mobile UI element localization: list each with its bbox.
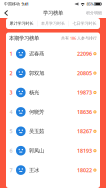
staticText: 杨光 [29, 89, 39, 96]
staticText: 本期学习榜单 [9, 35, 39, 42]
staticText: 吴玉茹 [29, 128, 44, 135]
staticText: 七日学习时长 [72, 21, 96, 26]
staticText: 迟春燕 [29, 50, 44, 57]
staticText: 186 [69, 36, 77, 41]
staticText: 4 [9, 108, 12, 115]
button[interactable]: 1 [6, 44, 100, 63]
staticText: 5 [9, 128, 12, 135]
staticText: 20805 [77, 70, 92, 77]
staticText: 9:41 [22, 1, 29, 7]
button[interactable]: 2 [6, 63, 100, 83]
button[interactable]: 5 [6, 122, 100, 141]
button[interactable]: 4 [6, 102, 100, 122]
staticText: 7 [9, 167, 12, 174]
staticText: 18022 [77, 167, 92, 174]
button[interactable]: 返回 [0, 8, 13, 18]
button[interactable]: 本月学习时长 [37, 18, 69, 29]
staticText: 学习榜单 [43, 10, 63, 16]
button[interactable]: 七日学习时长 [69, 18, 100, 29]
staticText: 累计学习时长 [9, 21, 33, 26]
staticText: 共有 [61, 36, 69, 41]
staticText: 王冰 [29, 167, 39, 173]
staticText: 6 [9, 147, 12, 154]
staticText: 3 [9, 89, 12, 96]
button[interactable]: 7 [6, 160, 100, 180]
staticText: 2 [9, 70, 12, 77]
staticText: 何晓芳 [29, 109, 44, 115]
staticText: 中国移动 [4, 1, 20, 6]
button[interactable]: 3 [6, 83, 100, 102]
staticText: 18636 [77, 108, 92, 115]
staticText: 积分明细 [86, 10, 102, 15]
button[interactable]: 累计学习时长 [6, 18, 37, 29]
staticText: 22096 [77, 50, 92, 57]
staticText: 郭双旭 [29, 70, 44, 76]
staticText: 人参与排行 [77, 36, 97, 41]
staticText: 18267 [77, 128, 92, 135]
button[interactable]: 积分明细 [82, 8, 106, 18]
staticText: 85% [86, 1, 93, 7]
staticText: 本月学习时长 [41, 21, 65, 26]
staticText: 郭凤山 [29, 147, 44, 154]
button[interactable]: 6 [6, 141, 100, 160]
staticText: 19873 [77, 89, 92, 96]
staticText: 1 [9, 50, 12, 57]
staticText: 18193 [77, 147, 92, 154]
